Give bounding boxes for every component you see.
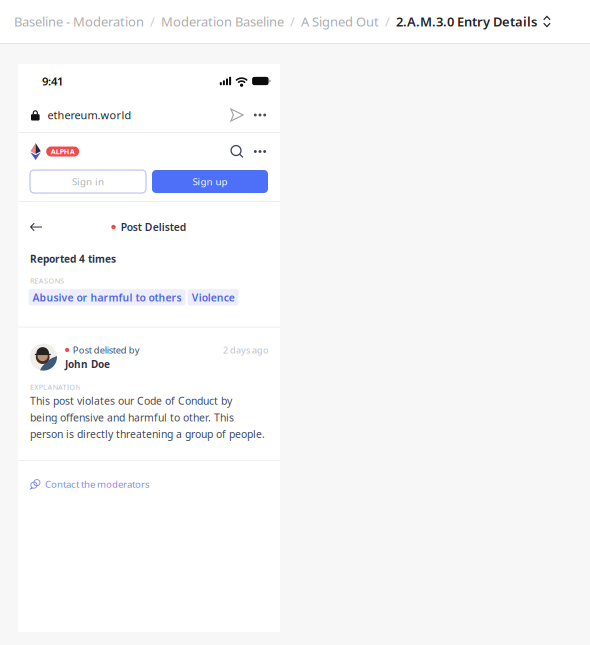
staticText: Post Delisted <box>121 220 187 234</box>
staticText: Violence <box>192 290 235 304</box>
button[interactable]: Contact the moderators <box>18 461 280 507</box>
staticText: 2.A.M.3.0 Entry Details <box>396 13 537 30</box>
staticText: / <box>290 13 295 30</box>
button[interactable]: Moderation Baseline <box>161 13 284 30</box>
staticText: A Signed Out <box>301 13 379 30</box>
staticText: Abusive or harmful to others <box>32 290 181 304</box>
button[interactable]: More options <box>249 140 271 162</box>
button[interactable]: Sign up <box>152 170 268 193</box>
button[interactable]: A Signed Out <box>301 13 379 30</box>
staticText: Post delisted by <box>73 344 140 356</box>
button[interactable]: Baseline - Moderation <box>14 13 144 30</box>
button[interactable]: 2.A.M.3.0 Entry Details <box>396 13 551 30</box>
staticText: Sign up <box>192 175 227 188</box>
staticText: This post violates our Code of Conduct b… <box>30 394 265 441</box>
staticText: Baseline - Moderation <box>14 13 144 30</box>
staticText: Contact the moderators <box>45 477 150 491</box>
button[interactable]: Sign in <box>30 170 146 193</box>
staticText: ethereum.world <box>48 108 132 122</box>
button[interactable]: Share page <box>225 104 249 126</box>
button[interactable]: Search <box>225 139 249 163</box>
staticText: 2 days ago <box>223 344 268 356</box>
staticText: / <box>385 13 390 30</box>
button[interactable]: Browser menu <box>249 104 271 126</box>
staticText: 9:41 <box>42 73 63 89</box>
staticText: REASONS <box>30 276 64 286</box>
staticText: Sign in <box>72 175 104 188</box>
staticText: Moderation Baseline <box>161 13 284 30</box>
staticText: / <box>150 13 155 30</box>
staticText: ALPHA <box>51 147 75 156</box>
staticText: John Doe <box>65 357 110 371</box>
staticText: Reported 4 times <box>30 252 116 266</box>
button[interactable]: Back <box>30 214 42 240</box>
staticText: EXPLANATION <box>30 382 80 392</box>
